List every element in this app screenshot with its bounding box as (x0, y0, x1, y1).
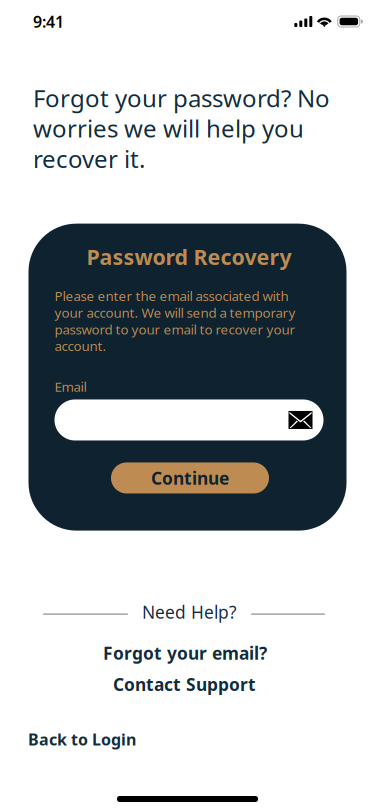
button[interactable]: Forgot your email? (103, 642, 267, 665)
staticText: Continue (151, 466, 229, 489)
staticText: Contact Support (113, 673, 256, 696)
staticText: Email (54, 378, 86, 395)
staticText: 9:41 (33, 11, 64, 32)
button[interactable]: Continue (111, 462, 269, 493)
staticText: Need Help? (142, 601, 237, 624)
staticText: Please enter the email associated with y… (54, 287, 295, 355)
staticText: Forgot your email? (103, 642, 267, 665)
staticText: Back to Login (28, 729, 136, 750)
button[interactable]: Back to Login (0, 729, 375, 750)
staticText: Password Recovery (86, 243, 291, 271)
staticText: Forgot your password? No worries we will… (33, 82, 330, 175)
button[interactable]: Contact Support (113, 673, 256, 696)
